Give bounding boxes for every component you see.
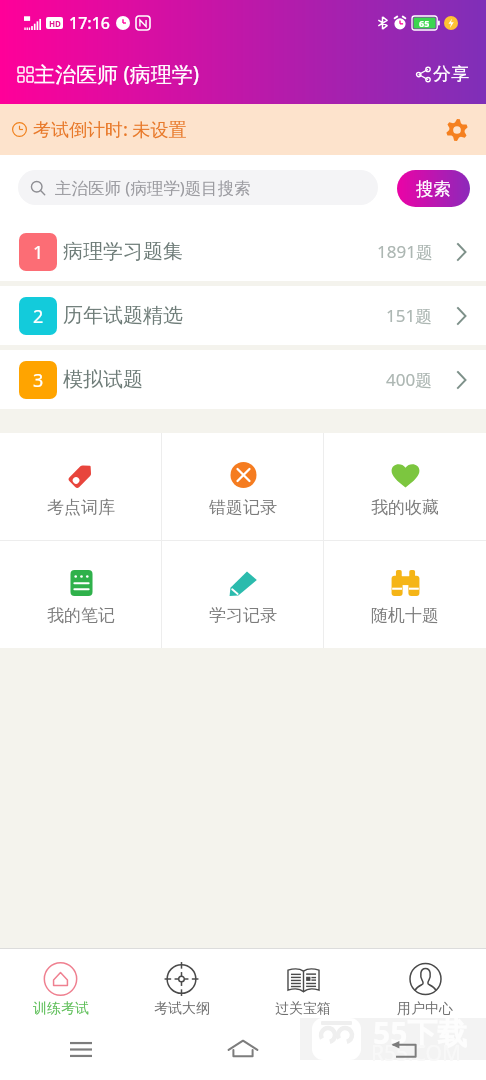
button[interactable]: 3 xyxy=(0,350,486,409)
button[interactable]: 1 xyxy=(0,222,486,281)
button[interactable]: 考点词库 xyxy=(0,433,162,540)
staticText: 历年试题精选 xyxy=(63,303,183,328)
staticText: 主治医师 (病理学) xyxy=(34,60,200,89)
staticText: 我的收藏 xyxy=(371,497,439,518)
button[interactable]: 用户中心 xyxy=(364,949,486,1018)
staticText: 模拟试题 xyxy=(63,367,143,392)
staticText: 1 xyxy=(33,240,44,265)
staticText: 主治医师 (病理学)题目搜索 xyxy=(55,176,251,199)
button[interactable]: 2 xyxy=(0,286,486,345)
staticText: 用户中心 xyxy=(397,1000,453,1018)
staticText: 1891题 xyxy=(377,240,433,263)
staticText: 2 xyxy=(33,304,44,329)
button[interactable]: 考试大纲 xyxy=(121,949,242,1018)
staticText: 训练考试 xyxy=(33,1000,89,1018)
staticText: 考试倒计时: 未设置 xyxy=(33,117,187,142)
staticText: 考点词库 xyxy=(47,497,115,518)
button[interactable]: 错题记录 xyxy=(162,433,324,540)
staticText: 随机十题 xyxy=(371,605,439,626)
staticText: 3 xyxy=(33,368,44,393)
button[interactable]: 我的笔记 xyxy=(0,541,162,648)
button[interactable]: 我的收藏 xyxy=(324,433,486,540)
staticText: 病理学习题集 xyxy=(63,239,183,264)
button[interactable]: Home xyxy=(228,1039,258,1060)
staticText: 151题 xyxy=(386,304,433,327)
staticText: 400题 xyxy=(386,368,433,391)
button[interactable]: Recent apps xyxy=(70,1042,92,1057)
staticText: R55.COM xyxy=(371,1039,461,1068)
button[interactable]: 训练考试 xyxy=(0,949,121,1018)
staticText: 过关宝箱 xyxy=(275,1000,331,1018)
staticText: 17:16 xyxy=(69,12,110,34)
staticText: 搜索 xyxy=(416,178,451,200)
staticText: 学习记录 xyxy=(209,605,277,626)
button[interactable]: 学习记录 xyxy=(162,541,324,648)
staticText: 我的笔记 xyxy=(47,605,115,626)
staticText: 分享 xyxy=(433,63,469,86)
staticText: 考试大纲 xyxy=(154,1000,210,1018)
button[interactable]: 过关宝箱 xyxy=(242,949,364,1018)
staticText: 错题记录 xyxy=(209,497,277,518)
button[interactable]: Back xyxy=(391,1040,419,1059)
button[interactable]: Settings xyxy=(442,115,472,145)
staticText: 55下载 xyxy=(373,1012,468,1053)
button[interactable]: 随机十题 xyxy=(324,541,486,648)
button[interactable]: 主治医师 (病理学)题目搜索 xyxy=(18,170,378,205)
staticText: 65 xyxy=(419,17,430,29)
button[interactable]: 分享 xyxy=(414,55,471,94)
staticText: HD xyxy=(49,18,61,29)
button[interactable]: 搜索 xyxy=(397,170,470,207)
